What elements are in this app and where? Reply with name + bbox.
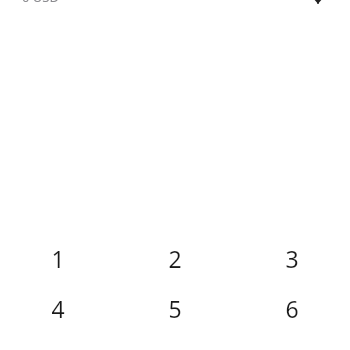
staticText: 1 [51,243,65,274]
button[interactable]: 5 [116,283,233,333]
button[interactable]: 1 [0,233,116,283]
button[interactable]: 3 [233,233,350,283]
staticText: 3 [285,243,299,274]
staticText: 6 [285,293,299,324]
staticText: 5 [168,293,182,324]
button[interactable]: 6 [233,283,350,333]
button[interactable]: 0 USD [14,0,78,10]
button[interactable]: 4 [0,283,116,333]
button[interactable]: Download [304,0,332,10]
staticText: 4 [51,293,65,324]
staticText: 2 [168,243,182,274]
staticText: 0 USD [22,0,59,6]
button[interactable]: 2 [116,233,233,283]
